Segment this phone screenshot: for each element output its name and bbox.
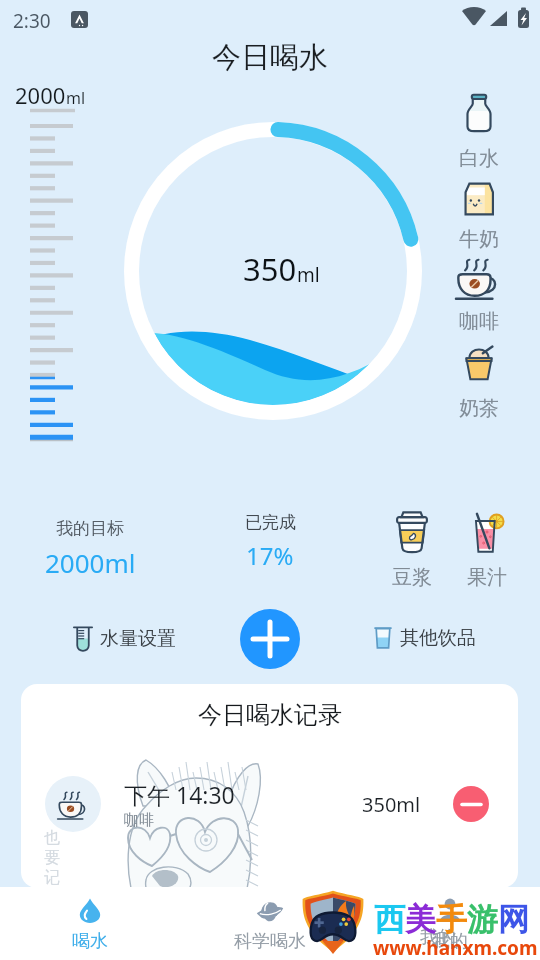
staticText: 果汁 — [467, 565, 507, 590]
staticText: 西 — [374, 900, 405, 939]
staticText: 喝水 — [72, 930, 108, 953]
staticText: 2000ml — [45, 545, 136, 580]
staticText: 水量设置 — [100, 627, 176, 651]
staticText: 17% — [246, 539, 294, 572]
staticText: 今日喝水 — [212, 39, 328, 76]
staticText: ml — [66, 87, 86, 109]
button[interactable]: 已完成 — [214, 512, 326, 572]
button[interactable]: Add water record — [240, 609, 300, 669]
staticText: 白水 — [459, 146, 499, 171]
button[interactable]: 牛奶 — [441, 171, 517, 253]
staticText: 下午 14:30 — [124, 779, 235, 810]
staticText: 其他饮品 — [400, 626, 476, 650]
button[interactable]: Remove record — [453, 786, 489, 822]
button[interactable]: 喝水 — [0, 887, 180, 960]
button[interactable]: 下午 14:30 — [45, 774, 489, 834]
staticText: 咖啡 — [124, 811, 154, 830]
staticText: 今日喝水记录 — [198, 700, 342, 730]
staticText: 2:30 — [13, 8, 51, 34]
button[interactable]: 豆浆 — [375, 508, 449, 590]
staticText: 网 — [498, 900, 529, 939]
staticText: 已完成 — [245, 512, 296, 533]
staticText: 350 — [243, 248, 297, 290]
staticText: 350ml — [362, 791, 421, 818]
staticText: 我的目标 — [56, 518, 124, 539]
staticText: 我的 — [432, 930, 468, 953]
staticText: 记 — [44, 868, 60, 888]
staticText: 手 — [436, 900, 467, 939]
staticText: 2000 — [15, 80, 66, 110]
button[interactable]: 白水 — [441, 84, 517, 172]
staticText: 要 — [44, 848, 60, 868]
staticText: 咖啡 — [459, 309, 499, 334]
button[interactable]: 我的 — [360, 887, 540, 960]
button[interactable]: 科学喝水 — [180, 887, 360, 960]
staticText: 也 — [44, 828, 60, 848]
button[interactable]: 水量设置 — [71, 624, 176, 654]
staticText: 奶茶 — [459, 396, 499, 421]
staticText: 美 — [405, 900, 436, 939]
staticText: 游 — [467, 900, 498, 939]
staticText: 豆浆 — [392, 565, 432, 590]
staticText: www.hanxm.com — [373, 935, 538, 960]
staticText: 科学喝水 — [234, 930, 306, 953]
button[interactable]: 我的目标 — [15, 518, 165, 580]
staticText: 牛奶 — [459, 227, 499, 252]
button[interactable]: 果汁 — [450, 508, 524, 590]
staticText: ml — [297, 262, 320, 288]
button[interactable]: 咖啡 — [441, 251, 517, 335]
staticText: 我的 — [420, 926, 456, 949]
button[interactable]: 奶茶 — [441, 333, 517, 422]
button[interactable]: 其他饮品 — [373, 625, 476, 651]
